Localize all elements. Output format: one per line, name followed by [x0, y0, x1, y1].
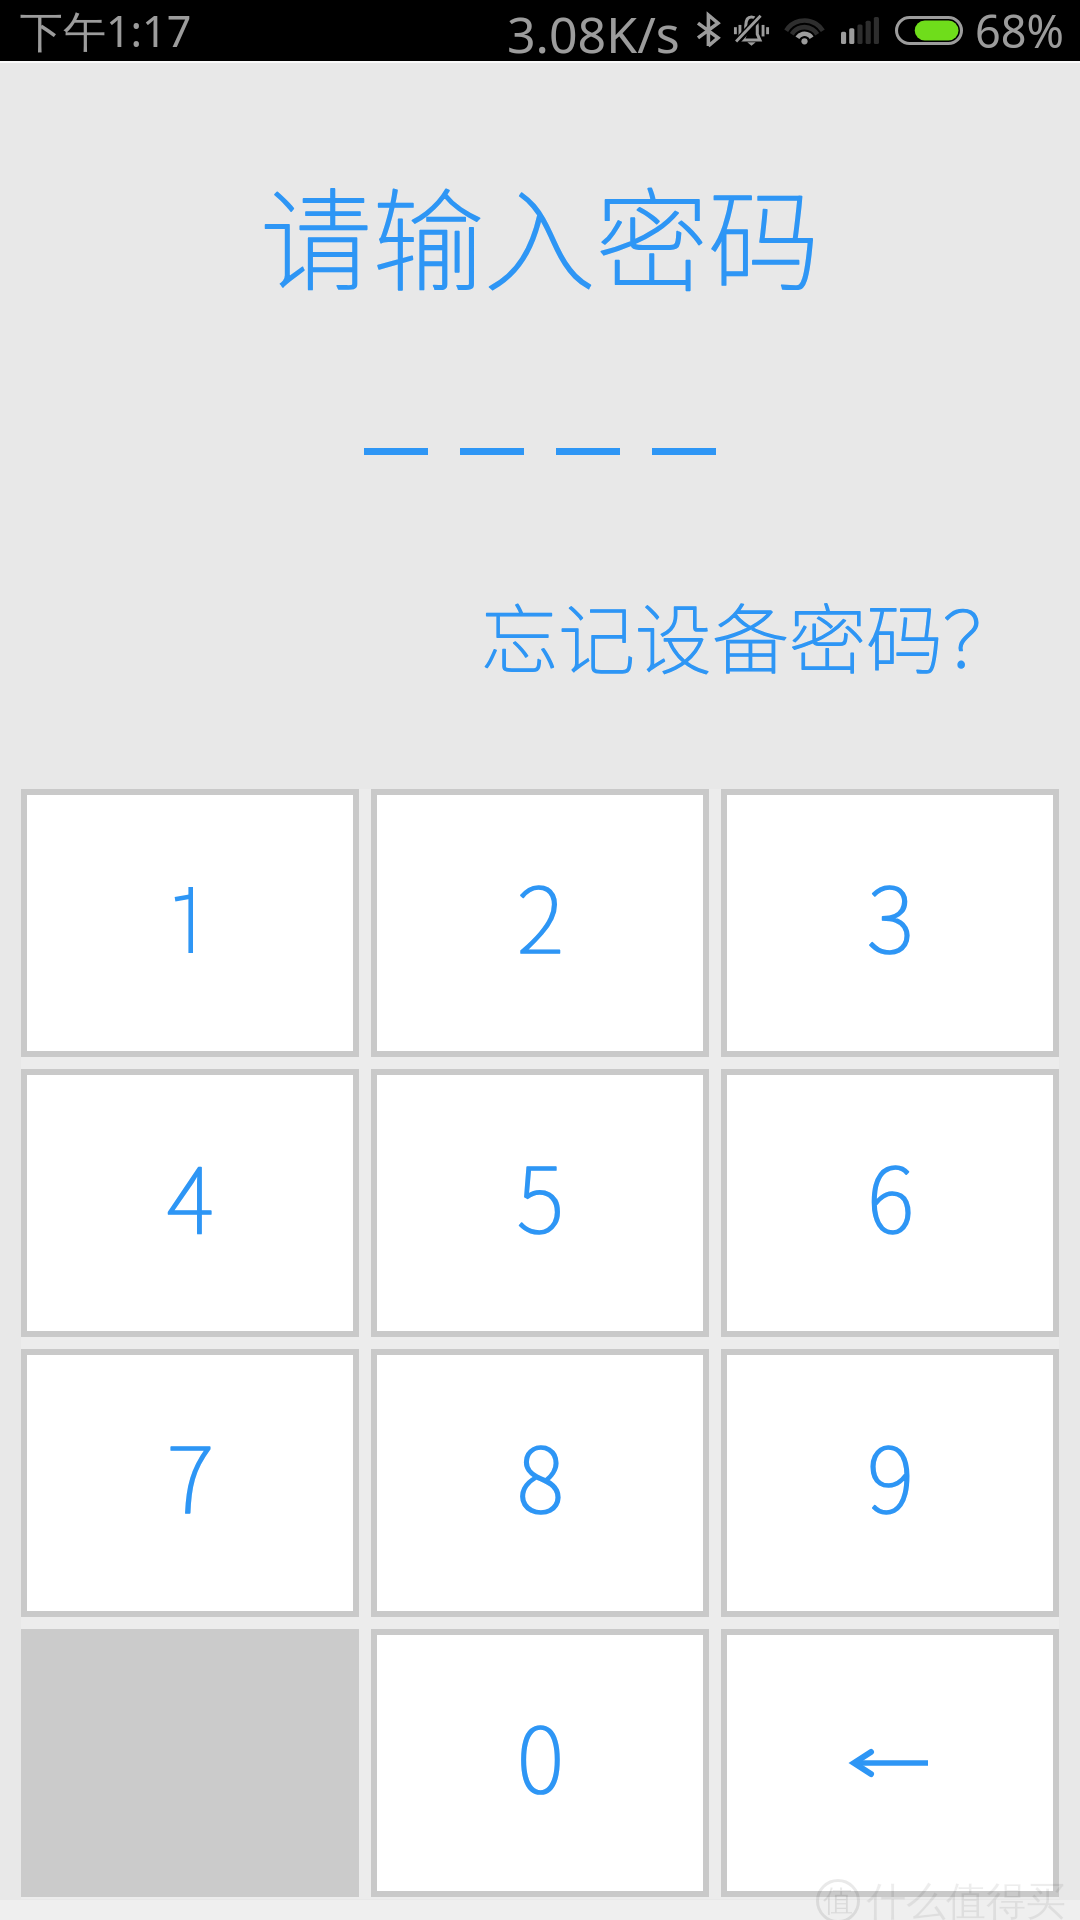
other: Silent mode — [734, 15, 769, 47]
button[interactable]: 3 — [721, 789, 1059, 1057]
staticText: 请输入密码 — [0, 152, 1080, 314]
other: 1 — [175, 887, 193, 953]
other: Battery 68 percent — [895, 16, 963, 45]
staticText: 0 — [517, 1689, 564, 1819]
staticText: 忘记设备密码？ — [481, 579, 1020, 690]
staticText: 9 — [867, 1409, 914, 1539]
button[interactable]: 4 — [21, 1069, 359, 1337]
staticText: 4 — [167, 1129, 214, 1259]
staticText: 值 — [823, 1882, 853, 1920]
staticText: 3.08K/s — [507, 0, 680, 61]
staticText: 3 — [867, 849, 914, 979]
staticText: 3 — [867, 849, 914, 979]
staticText: 5 — [517, 1129, 564, 1259]
staticText: 4 — [167, 1129, 214, 1259]
button[interactable]: 5 — [371, 1069, 709, 1337]
staticText: 8 — [517, 1409, 564, 1539]
staticText: 9 — [867, 1409, 914, 1539]
button[interactable]: 0 — [371, 1629, 709, 1897]
staticText: 下午1:17 — [20, 1, 192, 60]
button[interactable]: 1 — [21, 789, 359, 1057]
button[interactable]: 6 — [721, 1069, 1059, 1337]
staticText: 2 — [517, 849, 564, 979]
staticText: 请输入密码 — [0, 152, 1080, 314]
button[interactable]: 8 — [371, 1349, 709, 1617]
button[interactable]: Backspace — [721, 1629, 1059, 1897]
button[interactable]: 2 — [371, 789, 709, 1057]
staticText: 6 — [867, 1129, 914, 1259]
staticText: 2 — [517, 849, 564, 979]
staticText: 忘记设备密码？ — [481, 579, 1020, 690]
staticText: 5 — [517, 1129, 564, 1259]
staticText: 7 — [167, 1409, 214, 1539]
staticText: 0 — [517, 1689, 564, 1819]
staticText: 68% — [975, 0, 1064, 61]
other: Bluetooth — [698, 15, 718, 46]
staticText: 6 — [867, 1129, 914, 1259]
button[interactable]: 9 — [721, 1349, 1059, 1617]
button[interactable]: 忘记设备密码？ — [481, 579, 1020, 690]
staticText: 7 — [167, 1409, 214, 1539]
other: Mobile signal — [841, 17, 879, 44]
staticText: 什么值得买 — [866, 1876, 1066, 1920]
staticText: 8 — [517, 1409, 564, 1539]
other: Wi-Fi — [786, 17, 823, 44]
button[interactable]: 7 — [21, 1349, 359, 1617]
